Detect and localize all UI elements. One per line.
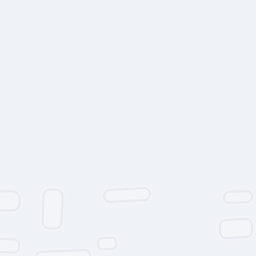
button[interactable]: Item 3 <box>99 184 154 205</box>
button[interactable]: Item 6 <box>0 234 23 256</box>
button[interactable]: Item 4 <box>219 187 256 207</box>
button[interactable]: Item 5 <box>215 215 256 242</box>
button[interactable]: Item 1 <box>0 187 24 215</box>
button[interactable]: Item 2 <box>38 185 66 233</box>
button[interactable]: Item 8 <box>93 233 120 253</box>
button[interactable]: Item 7 <box>31 246 94 256</box>
